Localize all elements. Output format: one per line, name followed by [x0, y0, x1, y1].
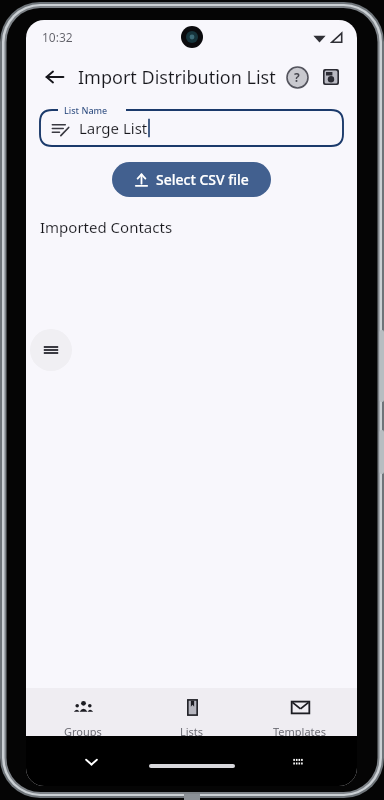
- button[interactable]: Templates: [248, 688, 352, 736]
- button[interactable]: Save: [315, 61, 347, 93]
- staticText: List Name: [64, 104, 108, 116]
- button[interactable]: Hide keyboard: [78, 748, 104, 774]
- staticText: Imported Contacts: [40, 217, 173, 237]
- button[interactable]: Groups: [31, 688, 135, 736]
- button[interactable]: Back: [38, 60, 72, 94]
- staticText: Select CSV file: [156, 170, 249, 189]
- staticText: Groups: [64, 724, 102, 736]
- staticText: ?: [294, 69, 300, 85]
- button[interactable]: Menu: [30, 329, 72, 371]
- staticText: Import Distribution List: [78, 65, 281, 90]
- button[interactable]: Switch keyboard: [285, 748, 311, 774]
- button[interactable]: Select CSV file: [112, 162, 271, 197]
- button[interactable]: Help: [281, 61, 313, 93]
- staticText: Templates: [273, 724, 327, 736]
- staticText: 10:32: [42, 29, 73, 45]
- button[interactable]: Lists: [140, 688, 244, 736]
- button[interactable]: Large List: [40, 110, 343, 146]
- button[interactable]: Home: [149, 764, 235, 768]
- staticText: Lists: [180, 724, 204, 736]
- staticText: Large List: [79, 118, 148, 138]
